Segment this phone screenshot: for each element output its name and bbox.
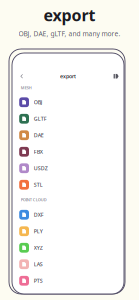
staticText: POINT CLOUD: [21, 197, 47, 202]
staticText: STL: [34, 181, 43, 188]
staticText: OBJ, DAE, gLTF, and many more.: [18, 29, 120, 38]
button[interactable]: XYZ: [12, 239, 124, 256]
staticText: OBJ: [34, 99, 43, 106]
staticText: XYZ: [34, 244, 43, 251]
button[interactable]: FBX: [12, 143, 124, 160]
button[interactable]: LAS: [12, 256, 124, 272]
button[interactable]: USDZ: [12, 160, 124, 176]
staticText: DAE: [34, 132, 44, 139]
button[interactable]: STL: [12, 176, 124, 193]
button[interactable]: Back: [12, 71, 28, 81]
button[interactable]: PLY: [12, 223, 124, 239]
button[interactable]: DAE: [12, 127, 124, 143]
staticText: PTS: [34, 277, 43, 284]
staticText: DXF: [34, 211, 44, 218]
staticText: MESH: [21, 85, 32, 90]
staticText: export: [60, 73, 76, 80]
button[interactable]: OBJ: [12, 94, 124, 110]
staticText: LAS: [34, 261, 43, 268]
button[interactable]: GLTF: [12, 110, 124, 127]
button[interactable]: PTS: [12, 272, 124, 289]
button[interactable]: DXF: [12, 206, 124, 223]
staticText: FBX: [34, 148, 43, 155]
staticText: USDZ: [34, 165, 48, 172]
staticText: GLTF: [34, 115, 47, 122]
button[interactable]: More: [109, 71, 124, 81]
staticText: PLY: [34, 228, 43, 235]
staticText: export: [43, 4, 95, 26]
